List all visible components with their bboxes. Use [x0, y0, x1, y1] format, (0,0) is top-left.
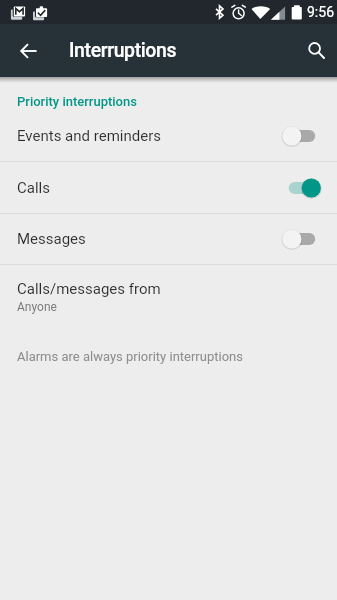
- button[interactable]: Messages: [0, 214, 337, 264]
- staticText: Calls/messages from: [17, 280, 161, 298]
- staticText: Anyone: [17, 300, 57, 314]
- staticText: Calls: [17, 179, 282, 197]
- staticText: Messages: [17, 230, 282, 248]
- button[interactable]: Calls: [0, 162, 337, 213]
- staticText: Priority interruptions: [17, 94, 137, 109]
- staticText: Events and reminders: [17, 127, 282, 145]
- button[interactable]: Calls/messages from: [0, 265, 337, 327]
- button[interactable]: Navigate up: [11, 31, 51, 71]
- staticText: Interruptions: [69, 39, 177, 62]
- button[interactable]: Events and reminders: [0, 110, 337, 161]
- button[interactable]: Search: [297, 31, 337, 71]
- staticText: 9:56: [307, 4, 334, 20]
- staticText: Alarms are always priority interruptions: [17, 349, 243, 364]
